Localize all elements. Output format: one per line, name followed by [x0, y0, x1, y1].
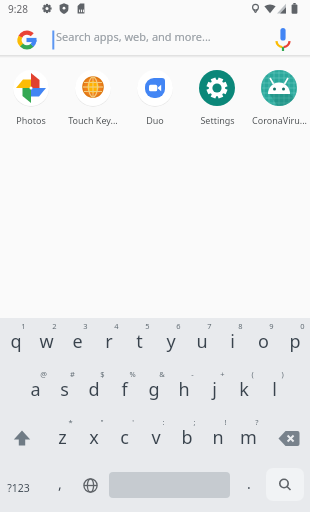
staticText: a [30, 377, 41, 402]
staticText: d [88, 377, 100, 402]
staticText: % [129, 369, 136, 379]
button[interactable]: s [50, 366, 79, 414]
button[interactable]: a [21, 366, 50, 414]
button[interactable]: o [248, 318, 279, 366]
staticText: CoronaViru... [252, 114, 307, 126]
button[interactable] [106, 463, 233, 512]
staticText: * [68, 417, 73, 427]
button[interactable]: . [233, 463, 264, 512]
button[interactable]: i [217, 318, 248, 366]
staticText: p [289, 329, 301, 354]
staticText: + [220, 369, 225, 379]
staticText: 7 [207, 321, 212, 331]
staticText: & [159, 369, 165, 379]
staticText: x [89, 425, 99, 450]
button[interactable]: Photos [0, 69, 62, 126]
staticText: ( [251, 369, 254, 379]
staticText: i [230, 329, 235, 354]
staticText: @ [40, 369, 47, 379]
button[interactable]: x [78, 414, 109, 463]
staticText: j [212, 377, 217, 402]
staticText: ? [255, 417, 259, 427]
staticText: Search apps, web, and more... [56, 29, 211, 44]
staticText: Photos [16, 114, 46, 126]
staticText: Settings [200, 114, 235, 126]
button[interactable]: e [62, 318, 93, 366]
button[interactable]: Search apps, web, and more... [0, 18, 310, 55]
staticText: Touch Key... [68, 114, 118, 126]
staticText: e [72, 329, 83, 354]
button[interactable]: h [169, 366, 199, 414]
staticText: k [239, 377, 249, 402]
staticText: 6 [176, 321, 181, 331]
staticText: m [240, 425, 257, 450]
button[interactable]: ?123 [0, 463, 44, 512]
staticText: z [58, 425, 67, 450]
button[interactable]: g [139, 366, 169, 414]
button[interactable]: q [0, 318, 31, 366]
button[interactable]: Settings [186, 69, 248, 126]
staticText: w [39, 329, 54, 354]
staticText: ; [193, 417, 196, 427]
staticText: 9:28 [8, 2, 28, 16]
button[interactable]: r [93, 318, 124, 366]
button[interactable] [75, 463, 106, 512]
staticText: 1 [21, 321, 26, 331]
button[interactable]: n [202, 414, 233, 463]
staticText: " [100, 417, 104, 427]
button[interactable]: Touch Key... [62, 69, 124, 126]
button[interactable]: f [109, 366, 139, 414]
staticText: 4 [114, 321, 119, 331]
staticText: 9 [269, 321, 274, 331]
button[interactable]: c [109, 414, 140, 463]
staticText: : [162, 417, 165, 427]
staticText: # [70, 369, 75, 379]
staticText: f [121, 377, 128, 402]
button[interactable]: z [47, 414, 78, 463]
staticText: 0 [300, 321, 305, 331]
button[interactable]: l [259, 366, 289, 414]
button[interactable]: b [171, 414, 202, 463]
staticText: , [58, 474, 62, 493]
staticText: l [272, 377, 277, 402]
staticText: s [60, 377, 69, 402]
button[interactable]: m [233, 414, 264, 463]
staticText: ?123 [7, 481, 30, 495]
button[interactable]: CoronaViru... [248, 69, 310, 126]
staticText: t [136, 329, 143, 354]
staticText: v [151, 425, 161, 450]
staticText: 5 [145, 321, 150, 331]
staticText: Duo [146, 114, 164, 126]
staticText: y [166, 329, 176, 354]
staticText: 2 [52, 321, 57, 331]
button[interactable]: t [124, 318, 155, 366]
staticText: ! [224, 417, 227, 427]
staticText: n [212, 425, 224, 450]
staticText: $ [100, 369, 105, 379]
staticText: ' [132, 417, 134, 427]
staticText: b [181, 425, 193, 450]
staticText: 8 [238, 321, 243, 331]
staticText: c [120, 425, 129, 450]
button[interactable] [0, 414, 47, 463]
staticText: q [10, 329, 22, 354]
button[interactable]: w [31, 318, 62, 366]
button[interactable]: d [79, 366, 109, 414]
staticText: u [196, 329, 208, 354]
staticText: . [247, 474, 251, 493]
staticText: r [105, 329, 113, 354]
staticText: o [258, 329, 269, 354]
button[interactable]: , [44, 463, 75, 512]
button[interactable] [264, 414, 310, 463]
button[interactable] [264, 463, 310, 512]
staticText: - [191, 369, 194, 379]
button[interactable]: j [199, 366, 229, 414]
staticText: h [178, 377, 190, 402]
button[interactable]: k [229, 366, 259, 414]
button[interactable]: v [140, 414, 171, 463]
button[interactable]: u [186, 318, 217, 366]
button[interactable]: y [155, 318, 186, 366]
button[interactable]: Duo [124, 69, 186, 126]
button[interactable]: p [279, 318, 310, 366]
staticText: ) [281, 369, 284, 379]
